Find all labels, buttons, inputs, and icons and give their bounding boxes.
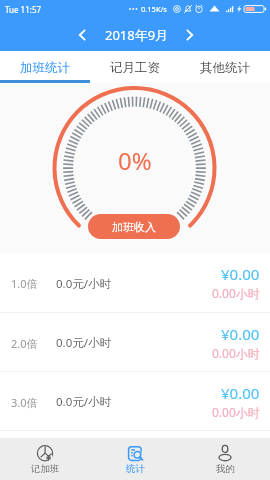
- button[interactable]: 3.0倍: [0, 372, 270, 430]
- staticText: ¥0.00: [221, 324, 260, 344]
- staticText: 2.0倍: [11, 336, 38, 351]
- staticText: 记加班: [31, 463, 60, 475]
- button[interactable]: 我的: [180, 438, 270, 480]
- staticText: 1.0倍: [11, 276, 38, 291]
- staticText: 3.0倍: [11, 395, 38, 410]
- staticText: ¥0.00: [221, 383, 260, 403]
- staticText: 0.00小时: [212, 404, 260, 420]
- staticText: 0.0元/小时: [56, 276, 112, 292]
- staticText: ¥0.00: [221, 264, 260, 284]
- button[interactable]: 1.0倍: [0, 253, 270, 312]
- button[interactable]: 加班统计: [0, 51, 90, 83]
- staticText: 0.0元/小时: [56, 335, 112, 351]
- staticText: 0%: [118, 144, 152, 177]
- button[interactable]: Previous month: [68, 21, 96, 49]
- button[interactable]: 2.0倍: [0, 313, 270, 371]
- staticText: 我的: [216, 463, 235, 475]
- button[interactable]: 记月工资: [90, 51, 180, 83]
- staticText: 加班收入: [112, 220, 156, 234]
- button[interactable]: 其他统计: [180, 51, 270, 83]
- button[interactable]: Next month: [176, 21, 204, 49]
- staticText: 0.0元/小时: [56, 394, 112, 410]
- staticText: 统计: [126, 463, 145, 475]
- staticText: Tue 11:57: [5, 4, 42, 15]
- button[interactable]: 加班收入: [88, 214, 180, 239]
- staticText: 2018年9月: [105, 26, 169, 44]
- staticText: 0.00小时: [212, 345, 260, 361]
- staticText: 0.15K/s: [141, 4, 167, 14]
- button[interactable]: 记加班: [0, 438, 90, 480]
- staticText: 0.00小时: [212, 285, 260, 301]
- button[interactable]: 统计: [90, 438, 180, 480]
- staticText: 记月工资: [110, 60, 160, 76]
- staticText: 加班统计: [20, 60, 70, 76]
- staticText: 其他统计: [200, 60, 250, 76]
